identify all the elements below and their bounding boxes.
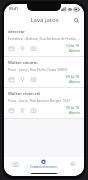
button[interactable]: Walker ubuntu [4,57,84,87]
staticText: Fortaleza - Aldeota, Rua Barbosa de Frei… [8,36,80,41]
button[interactable]: Location [19,76,26,83]
staticText: detercar [8,29,25,35]
button[interactable]: detercar [4,26,84,56]
staticText: 09 às 18 [66,74,80,79]
button[interactable]: Schedule [8,45,15,52]
staticText: 14 às 19 [66,43,80,48]
button[interactable]: Location [19,45,26,52]
staticText: Lava jatos [30,16,59,24]
button[interactable]: Photos [30,76,37,83]
staticText: Aberto [69,48,80,53]
staticText: Walker ubuntu [8,60,38,66]
staticText: 09 às 18 [66,105,80,110]
staticText: 09:41 [9,6,18,11]
staticText: Aberto [69,79,80,84]
button[interactable]: Photos [30,107,37,114]
staticText: Walker clean zol [8,91,41,97]
button[interactable]: Walker clean zol [4,88,84,118]
button[interactable]: Schedule [8,76,15,83]
staticText: Aberto [69,110,80,115]
staticText: Picos - Junco, Rua Pedro Chata 50850 [8,67,80,72]
button[interactable]: Search [71,15,81,25]
staticText: Estabelecimentos [30,165,57,169]
button[interactable]: Schedule [8,107,15,114]
button[interactable]: Profile [60,157,84,171]
button[interactable]: Photos [30,45,37,52]
button[interactable]: Favorites [4,157,27,171]
staticText: Picos - Junco, Rua Antonio Borges 1047 [8,98,80,103]
button[interactable]: Location [19,107,26,114]
button[interactable]: Estabelecimentos [27,157,60,171]
